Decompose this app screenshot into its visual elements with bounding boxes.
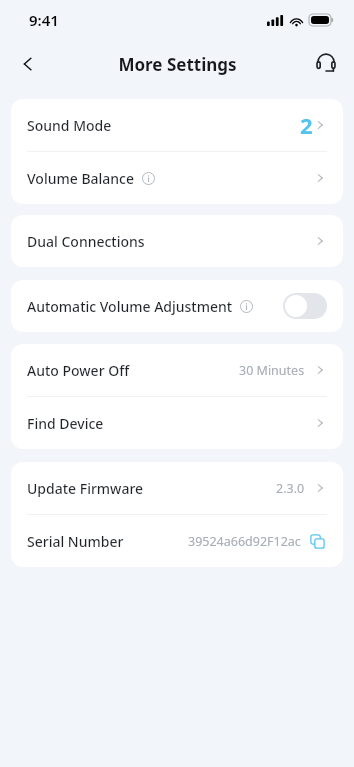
staticText: 39524a66d92F12ac <box>188 533 301 550</box>
button[interactable]: Sound Mode <box>11 99 343 151</box>
button[interactable]: Update Firmware <box>11 462 343 514</box>
staticText: 2 <box>300 110 313 140</box>
staticText: Dual Connections <box>27 232 145 251</box>
button[interactable]: Back <box>8 44 48 84</box>
staticText: 9:41 <box>29 10 59 30</box>
button[interactable]: Serial Number <box>11 515 343 567</box>
staticText: Find Device <box>27 414 104 433</box>
staticText: More Settings <box>118 53 237 76</box>
button[interactable]: Auto Power Off <box>11 344 343 396</box>
staticText: 2.3.0 <box>276 480 305 497</box>
button[interactable]: Support headset <box>306 44 346 84</box>
button[interactable]: Automatic Volume Adjustment <box>11 280 343 332</box>
staticText: 30 Minutes <box>239 362 305 379</box>
staticText: Sound Mode <box>27 116 112 135</box>
staticText: Volume Balance <box>27 169 135 188</box>
button[interactable]: Dual Connections <box>11 215 343 267</box>
staticText: Auto Power Off <box>27 361 130 380</box>
staticText: Automatic Volume Adjustment <box>27 297 233 316</box>
button[interactable]: Find Device <box>11 397 343 449</box>
button[interactable]: Copy serial number <box>307 531 327 551</box>
button[interactable]: Automatic Volume Adjustment toggle <box>283 293 327 319</box>
staticText: Serial Number <box>27 532 124 551</box>
staticText: Update Firmware <box>27 479 144 498</box>
button[interactable]: Volume Balance <box>11 152 343 204</box>
